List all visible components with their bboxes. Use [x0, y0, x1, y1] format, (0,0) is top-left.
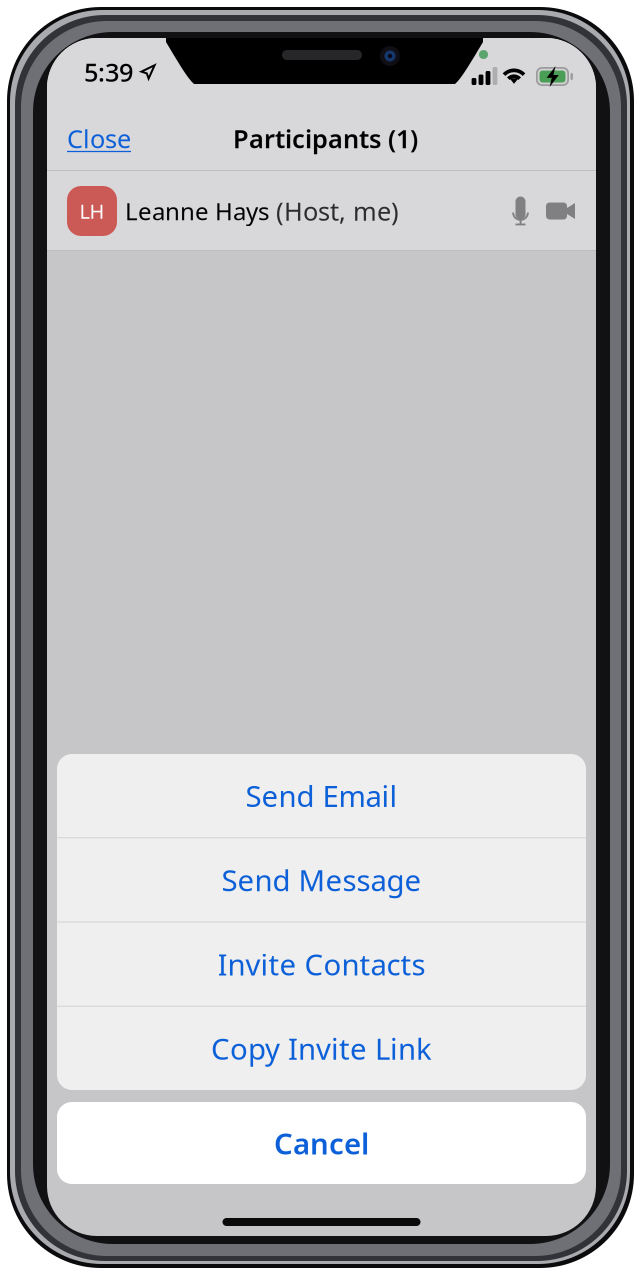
staticText: Send Email [245, 776, 397, 815]
staticText: (Host, me) [276, 194, 399, 228]
button[interactable]: LH [47, 171, 596, 251]
staticText: Leanne Hays [125, 195, 269, 227]
staticText: Participants (1) [233, 122, 418, 155]
staticText: LH [79, 198, 104, 224]
staticText: 5:39 [84, 55, 133, 89]
staticText: Send Message [221, 860, 421, 899]
button[interactable]: Copy Invite Link [57, 1007, 586, 1090]
staticText: Cancel [274, 1123, 369, 1162]
button[interactable]: Send Message [57, 838, 586, 921]
staticText: Invite Contacts [217, 945, 425, 984]
staticText: Close [67, 122, 131, 155]
button[interactable]: Invite Contacts [57, 922, 586, 1006]
staticText: Copy Invite Link [211, 1029, 432, 1068]
button[interactable]: Cancel [57, 1102, 586, 1184]
button[interactable]: Send Email [57, 754, 586, 837]
button[interactable]: Close [61, 110, 137, 167]
